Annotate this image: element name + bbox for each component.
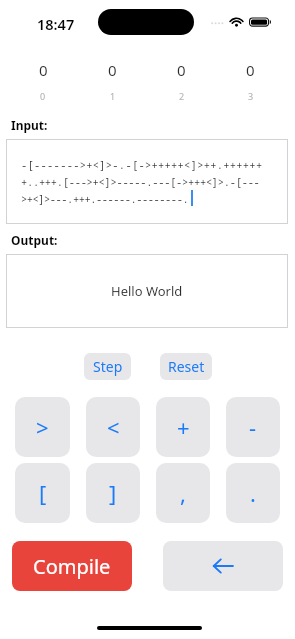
staticText: , [180, 478, 186, 508]
button[interactable]: 0 [8, 60, 78, 102]
staticText: -[------->+<]>-.-[->+++++<]>++.++++++ [21, 158, 263, 172]
button[interactable]: + [156, 397, 210, 457]
staticText: < [107, 412, 120, 442]
staticText: 0 [108, 60, 117, 80]
button[interactable]: [ [15, 463, 70, 523]
staticText: Compile [33, 553, 111, 580]
staticText: Input: [11, 117, 48, 133]
button[interactable]: Reset [160, 353, 212, 380]
staticText: 2 [179, 90, 185, 102]
button[interactable]: Step [84, 353, 131, 380]
staticText: +..+++.[--->+<]>-----.---[->+++<]>.-[--- [21, 175, 260, 189]
staticText: 0 [177, 60, 186, 80]
staticText: ] [109, 478, 117, 508]
button[interactable]: 0 [78, 60, 147, 102]
staticText: [ [39, 478, 47, 508]
staticText: 18:47 [37, 14, 75, 34]
staticText: - [249, 412, 257, 442]
button[interactable]: < [86, 397, 140, 457]
button[interactable]: , [156, 463, 210, 523]
staticText: Reset [168, 357, 205, 376]
button[interactable]: ] [86, 463, 140, 523]
staticText: > [36, 412, 49, 442]
button[interactable]: Backspace [163, 541, 283, 591]
button[interactable]: -[------->+<]>-.-[->+++++<]>++.++++++ [6, 139, 288, 224]
staticText: Hello World [111, 282, 183, 300]
button[interactable]: . [226, 463, 280, 523]
button[interactable]: 0 [147, 60, 216, 102]
button[interactable]: - [226, 397, 280, 457]
button[interactable]: Compile [12, 541, 132, 591]
button[interactable]: > [15, 397, 70, 457]
staticText: 0 [39, 60, 48, 80]
staticText: 1 [110, 90, 116, 102]
button[interactable]: 0 [216, 60, 285, 102]
staticText: 0 [40, 90, 46, 102]
staticText: 0 [246, 60, 255, 80]
staticText: 3 [248, 90, 254, 102]
staticText: Step [93, 357, 123, 376]
staticText: . [250, 478, 256, 508]
staticText: >+<]>---.+++.------.--------. [21, 192, 189, 206]
staticText: Output: [11, 232, 58, 248]
staticText: + [177, 412, 190, 442]
